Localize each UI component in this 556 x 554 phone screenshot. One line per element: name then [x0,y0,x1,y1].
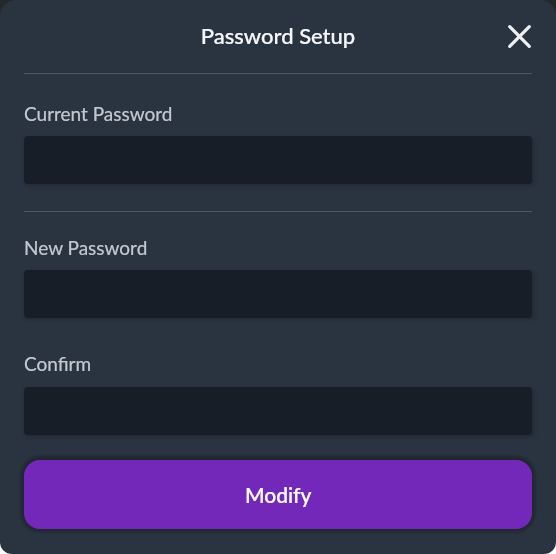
staticText: Modify [245,482,312,507]
staticText: Password Setup [0,22,556,48]
staticText: Confirm [24,352,92,375]
staticText: Current Password [24,102,173,125]
button[interactable]: Modify [24,460,532,529]
button[interactable]: Close dialog [497,14,541,58]
staticText: New Password [24,236,148,259]
